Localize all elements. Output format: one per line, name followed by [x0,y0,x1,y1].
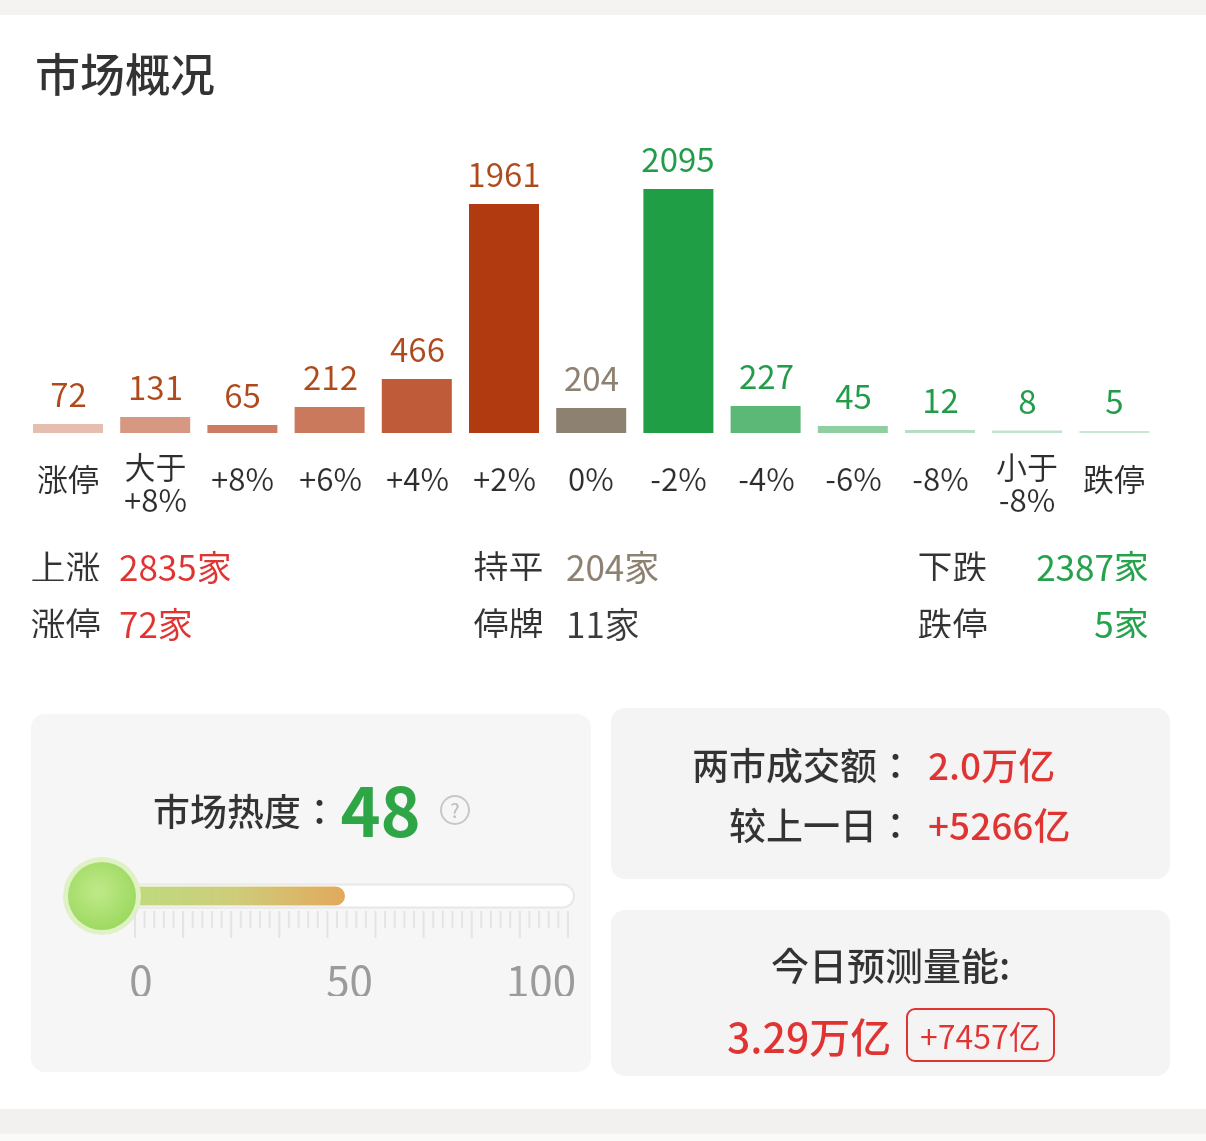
staticText: +6% [299,455,362,497]
staticText: -8% [912,455,969,497]
staticText: 2095 [641,134,715,174]
staticText: 1961 [467,149,541,189]
staticText: 48 [340,758,421,848]
staticText: 持平 [473,540,544,581]
staticText: +2% [473,455,536,497]
staticText: 2835家 [119,540,232,591]
staticText: 大于 +8% [124,443,187,517]
button[interactable]: 今日预测量能: [611,910,1170,1076]
staticText: +4% [386,455,449,497]
staticText: 上涨 [30,540,101,581]
staticText: 12 [922,375,959,415]
staticText: 131 [128,362,183,402]
staticText: 2387家 [1036,540,1149,581]
staticText: 212 [303,352,358,392]
staticText: ? [450,796,460,824]
staticText: +7457亿 [920,1012,1041,1058]
staticText: 5家 [1094,597,1149,638]
staticText: 小于 -8% [996,443,1058,517]
staticText: -4% [738,455,795,497]
staticText: 较上一日： [729,797,914,851]
staticText: 204 [564,353,619,393]
staticText: 5 [1105,376,1124,416]
staticText: 45 [835,371,872,411]
staticText: 下跌 [917,540,988,581]
staticText: 50 [326,948,373,996]
button[interactable] [31,714,591,1072]
staticText: 停牌 [473,597,544,638]
staticText: -6% [825,455,882,497]
staticText: 227 [739,351,794,391]
staticText: 0% [568,455,614,497]
staticText: 65 [224,370,261,410]
staticText: 市场概况 [35,40,216,105]
staticText: 11家 [566,597,640,648]
staticText: 涨停 [30,597,101,638]
staticText: 两市成交额： [692,737,914,791]
staticText: 72家 [119,597,193,648]
staticText: 涨停 [37,455,99,497]
staticText: 今日预测量能: [771,936,1011,991]
staticText: 2.0万亿 [928,737,1056,791]
staticText: 72 [50,369,87,409]
staticText: 100 [506,948,576,996]
staticText: 跌停 [1083,455,1145,497]
staticText: 0 [129,948,153,996]
staticText: 8 [1018,376,1037,416]
button[interactable]: 两市成交额： [611,708,1170,879]
staticText: -2% [650,455,707,497]
staticText: 市场热度： [153,783,338,829]
staticText: 466 [390,324,445,364]
staticText: +8% [211,455,274,497]
staticText: 跌停 [917,597,988,638]
staticText: 3.29万亿 [727,1005,892,1064]
staticText: 204家 [566,540,660,591]
staticText: +5266亿 [928,797,1071,851]
